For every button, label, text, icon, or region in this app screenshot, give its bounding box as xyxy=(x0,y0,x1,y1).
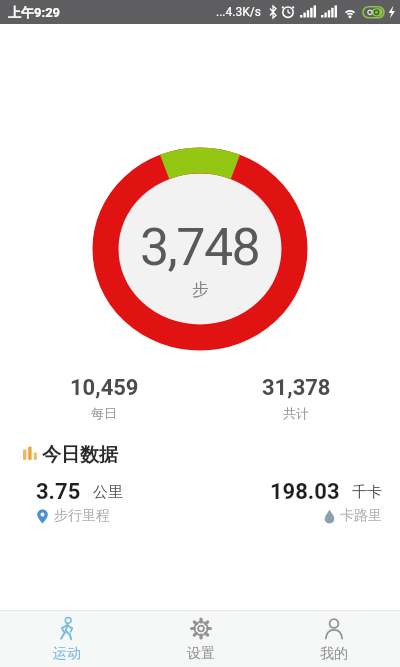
button[interactable]: 31,378 xyxy=(200,375,392,421)
staticText: 198.03 xyxy=(270,479,340,505)
staticText: 10,459 xyxy=(70,375,139,401)
staticText: 步 xyxy=(192,279,209,300)
button[interactable]: 198.03 xyxy=(270,479,382,525)
staticText: 千卡 xyxy=(352,483,382,502)
button[interactable]: 3.75 xyxy=(36,479,123,525)
staticText: 3.75 xyxy=(36,479,81,505)
button[interactable]: 设置 xyxy=(134,611,267,667)
staticText: 每日 xyxy=(91,405,117,421)
button[interactable]: 10,459 xyxy=(8,375,200,421)
staticText: 步行里程 xyxy=(54,507,110,525)
staticText: ...4.3K/s xyxy=(216,5,261,19)
staticText: 运动 xyxy=(53,645,81,663)
staticText: 我的 xyxy=(320,645,348,663)
staticText: 31,378 xyxy=(262,375,331,401)
staticText: 公里 xyxy=(93,483,123,502)
staticText: 设置 xyxy=(187,645,215,663)
staticText: 共计 xyxy=(283,405,309,421)
staticText: 3,748 xyxy=(140,217,260,278)
button[interactable]: 我的 xyxy=(267,611,400,667)
staticText: 今日数据 xyxy=(42,443,118,467)
staticText: 上午9:29 xyxy=(8,4,61,20)
staticText: 卡路里 xyxy=(340,507,382,525)
button[interactable]: 运动 xyxy=(0,611,134,667)
